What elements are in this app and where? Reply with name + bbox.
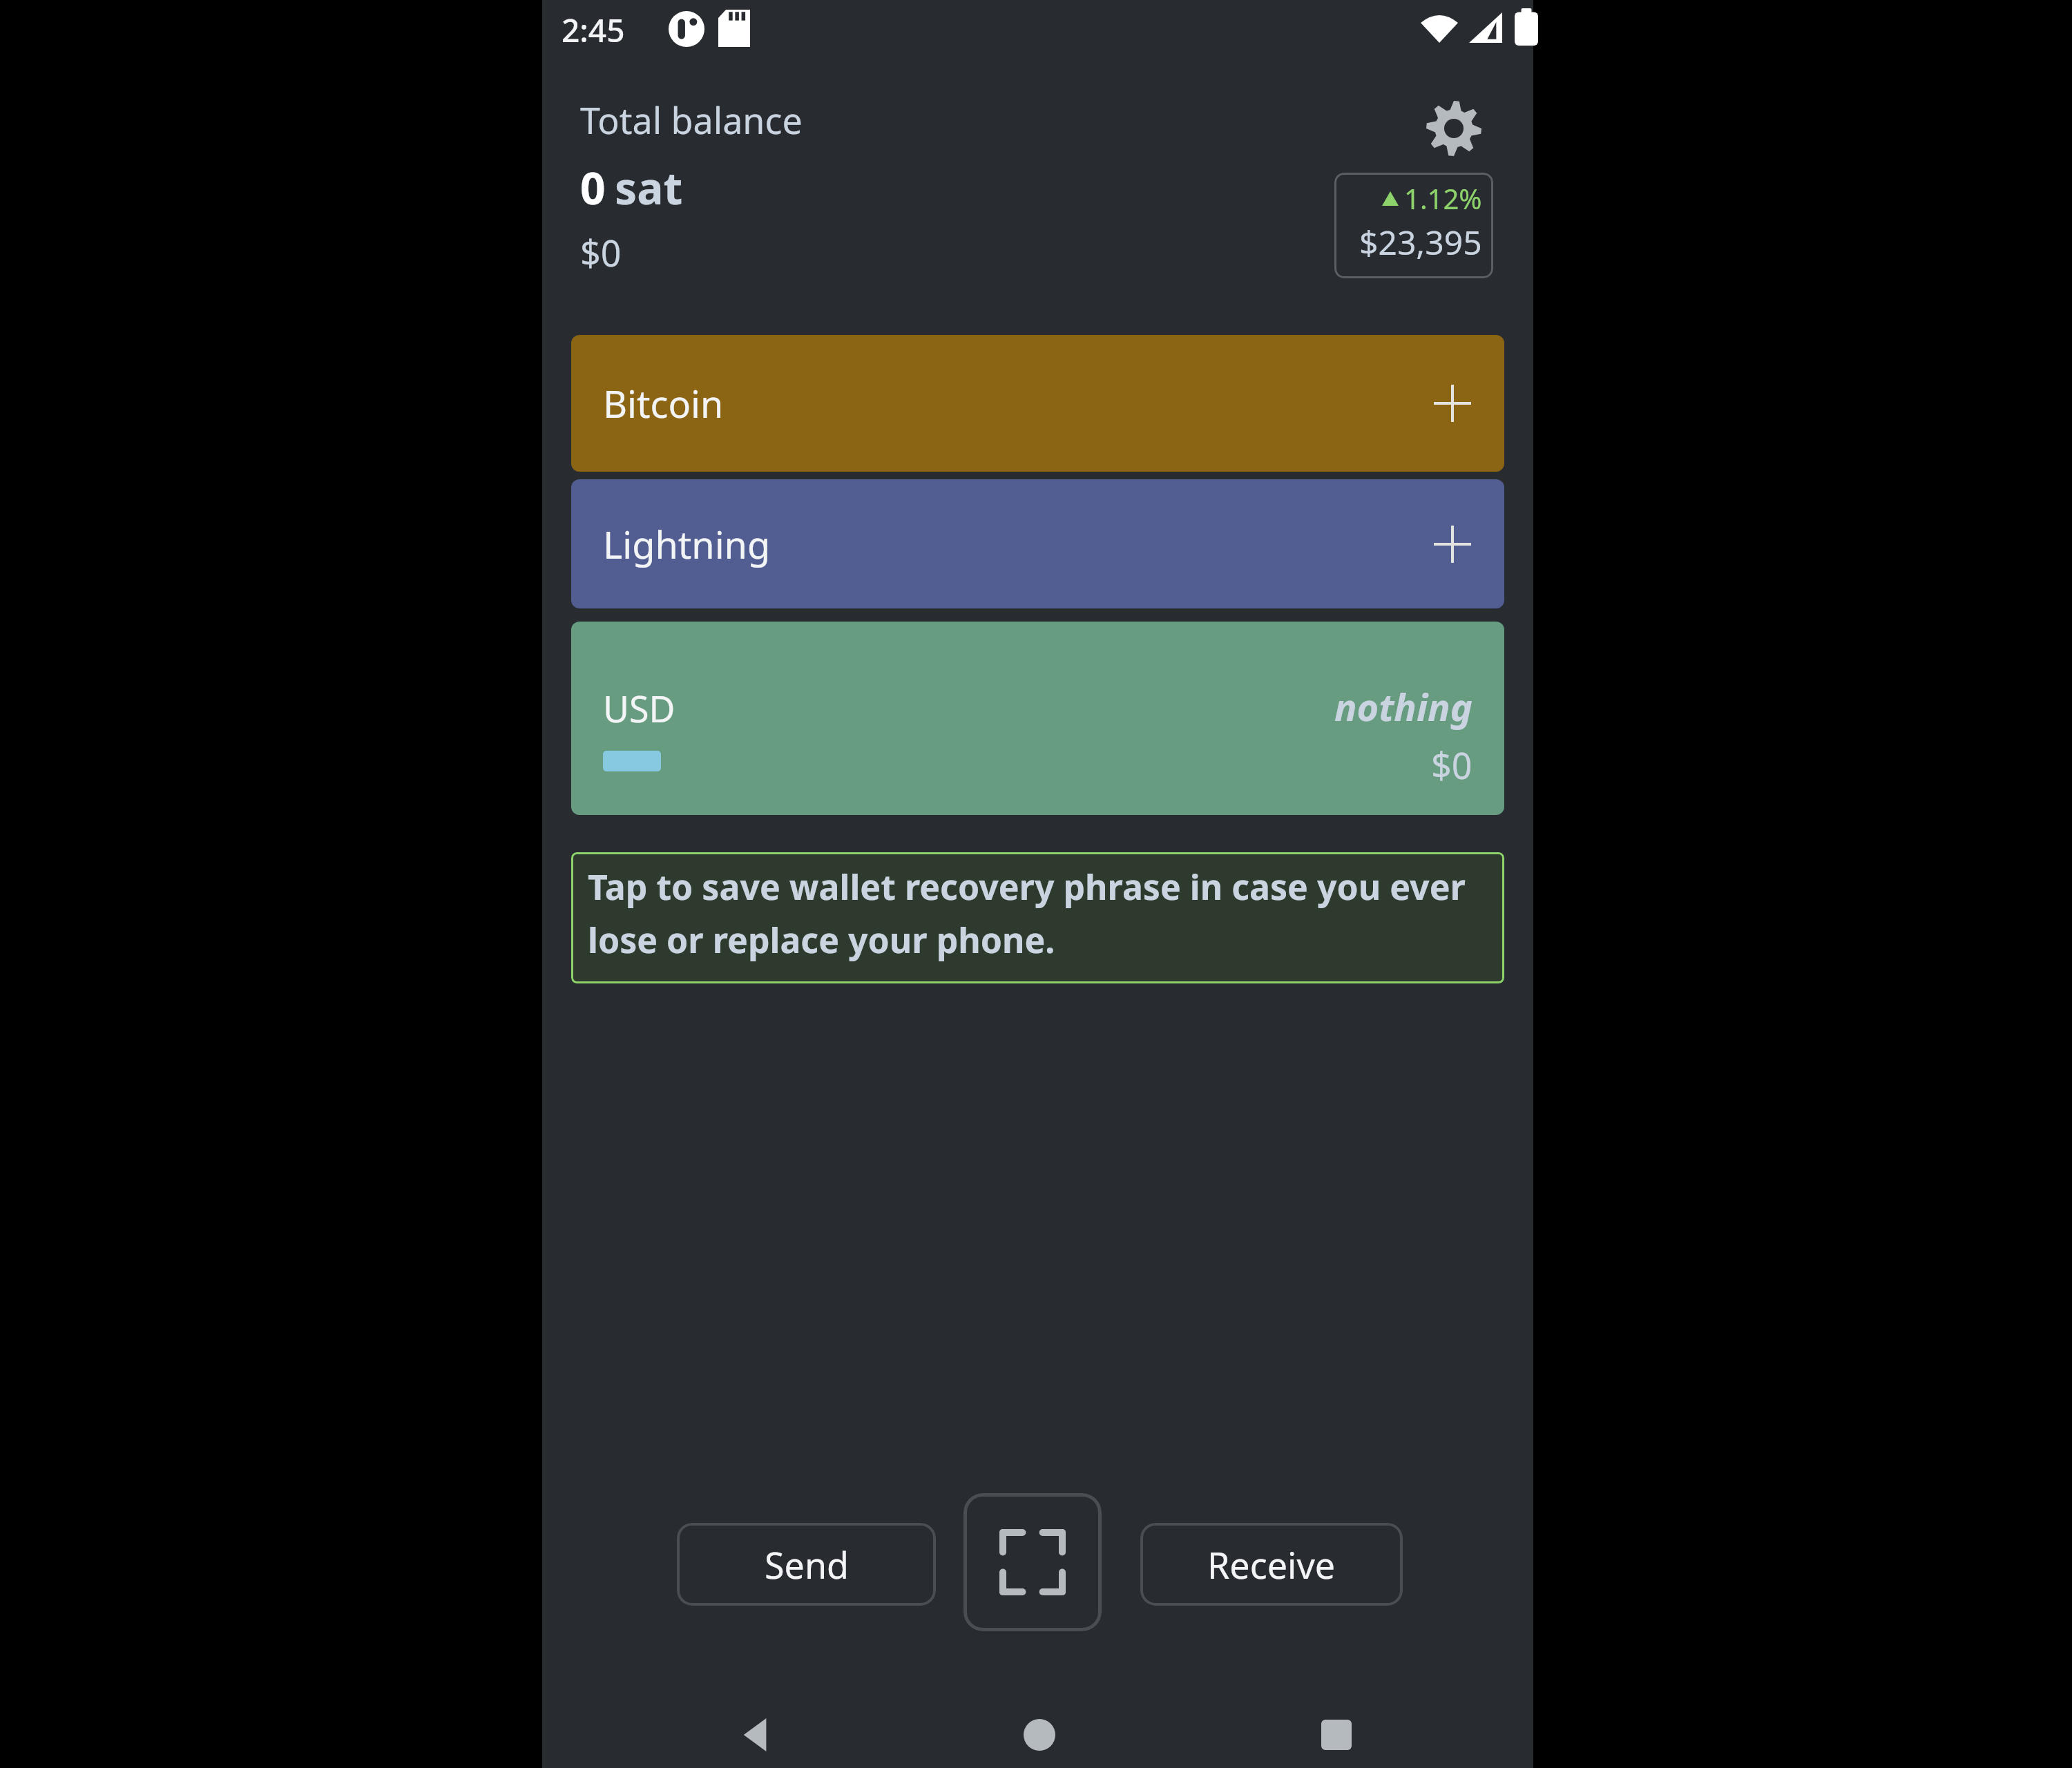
staticText: USD [603,684,675,733]
button[interactable]: Lightning [571,479,1504,608]
staticText: $0 [1431,740,1473,789]
button[interactable]: Bitcoin [571,335,1504,472]
staticText: Receive [1207,1540,1336,1589]
staticText: $23,395 [1359,220,1482,265]
button[interactable]: Recent apps [1302,1700,1371,1768]
staticText: Bitcoin [603,378,724,429]
button[interactable]: Receive [1140,1523,1403,1606]
button[interactable]: Scan QR code [963,1493,1102,1631]
staticText: 2:45 [562,8,625,52]
staticText: 0 [580,157,606,218]
button[interactable]: USD [571,622,1504,815]
button[interactable]: Settings [1421,95,1487,162]
button[interactable]: Send [677,1523,936,1606]
staticText: Lightning [603,519,771,570]
staticText: $0 [580,228,622,277]
button[interactable]: Back [722,1700,791,1768]
staticText: Total balance [580,95,803,144]
button[interactable]: Home [1005,1700,1074,1768]
staticText: sat [615,157,683,218]
staticText: 1.12% [1404,180,1482,217]
button[interactable]: 1.12% [1334,173,1493,278]
staticText: Tap to save wallet recovery phrase in ca… [588,863,1488,963]
staticText: nothing [1334,681,1473,732]
staticText: Send [765,1540,849,1589]
button[interactable]: Tap to save wallet recovery phrase in ca… [571,852,1504,983]
